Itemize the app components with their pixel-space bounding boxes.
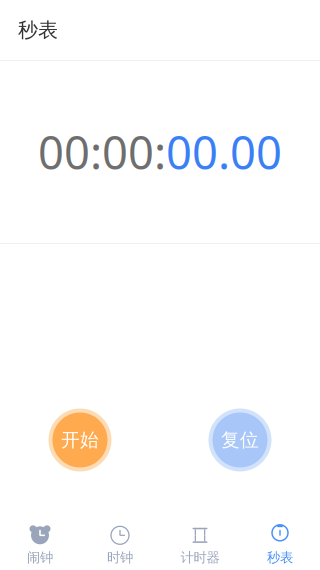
button[interactable]: 秒表	[240, 520, 320, 570]
button[interactable]: 计时器	[160, 520, 240, 570]
staticText: 秒表	[18, 18, 58, 42]
button[interactable]: 开始	[48, 408, 111, 471]
staticText: 计时器	[180, 549, 219, 566]
button[interactable]: 时钟	[80, 520, 160, 570]
staticText: 开始	[61, 428, 99, 451]
button[interactable]: 复位	[208, 408, 271, 471]
staticText: 复位	[221, 428, 259, 451]
staticText: 00.00	[166, 122, 282, 182]
button[interactable]: 闹钟	[0, 520, 80, 570]
staticText: 秒表	[267, 549, 293, 566]
staticText: 时钟	[107, 549, 133, 566]
staticText: 闹钟	[27, 549, 53, 566]
staticText: 00:00:	[38, 122, 166, 182]
